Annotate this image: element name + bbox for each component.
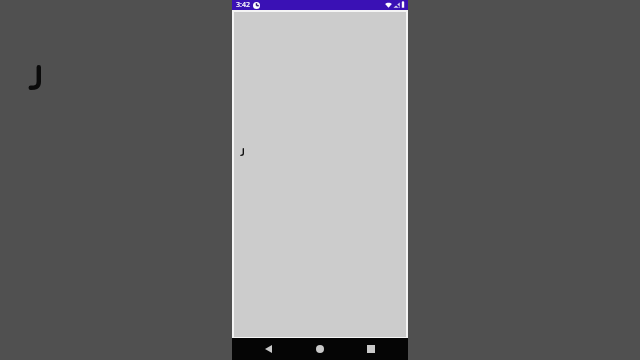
staticText: 3:42 [236, 0, 250, 10]
button[interactable]: Recents [352, 338, 390, 360]
button[interactable]: Back [249, 338, 287, 360]
button[interactable]: Home [301, 338, 339, 360]
